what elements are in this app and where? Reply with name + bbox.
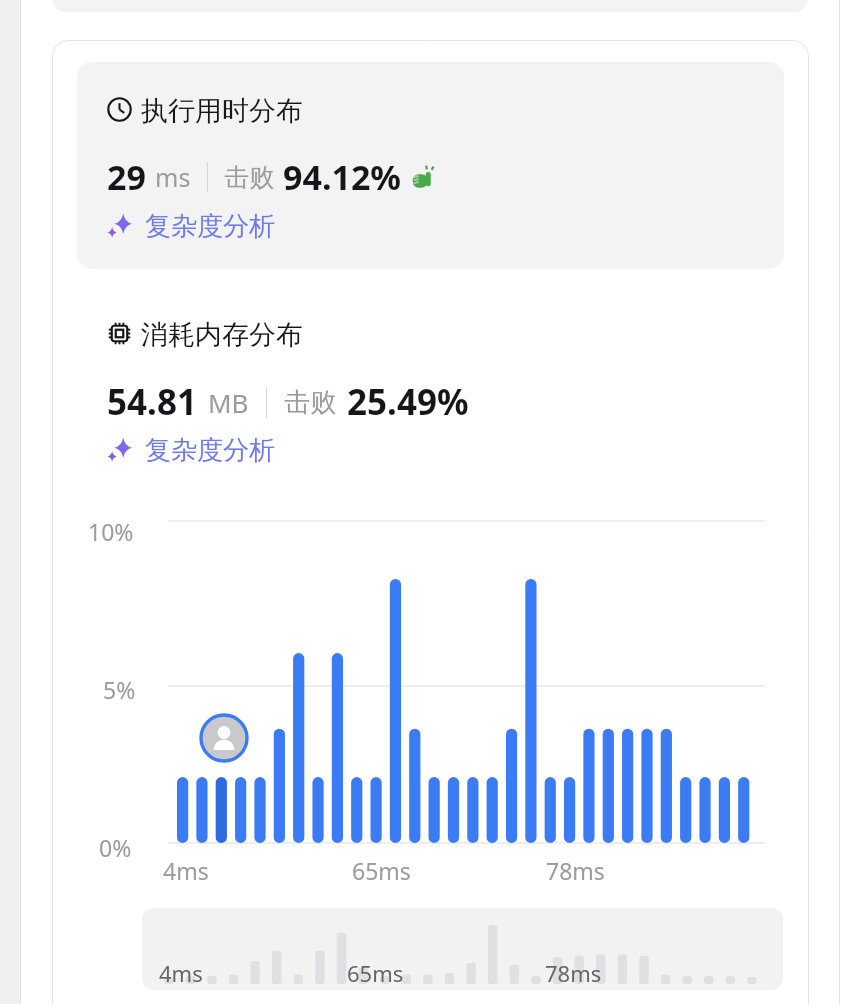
- staticText: 4ms: [159, 958, 203, 988]
- button[interactable]: 4ms: [142, 908, 783, 990]
- staticText: MB: [208, 385, 249, 420]
- other: Memory: [107, 321, 132, 346]
- staticText: 执行用时分布: [141, 94, 303, 128]
- button[interactable]: [77, 62, 784, 269]
- staticText: 29: [107, 154, 146, 200]
- other: AI complexity analysis: [107, 437, 134, 464]
- staticText: 消耗内存分布: [141, 318, 303, 352]
- staticText: 击败: [284, 386, 336, 419]
- button[interactable]: AI complexity analysis: [102, 429, 280, 472]
- staticText: 65ms: [347, 958, 404, 988]
- staticText: 94.12%: [283, 154, 402, 200]
- staticText: 65ms: [352, 855, 411, 886]
- other: AI complexity analysis: [107, 213, 134, 240]
- staticText: 10%: [88, 516, 134, 547]
- staticText: 54.81: [107, 378, 197, 426]
- staticText: 25.49%: [347, 378, 469, 426]
- staticText: 4ms: [163, 855, 209, 886]
- staticText: 0%: [99, 832, 132, 863]
- staticText: 复杂度分析: [145, 434, 275, 467]
- staticText: 5%: [103, 674, 136, 705]
- button[interactable]: AI complexity analysis: [102, 205, 280, 248]
- other: Applause: [410, 164, 437, 191]
- other: Runtime: [107, 97, 132, 122]
- staticText: 复杂度分析: [145, 210, 275, 243]
- staticText: 78ms: [546, 855, 605, 886]
- staticText: ms: [155, 160, 191, 194]
- staticText: 击败: [224, 162, 274, 193]
- staticText: 78ms: [545, 958, 602, 988]
